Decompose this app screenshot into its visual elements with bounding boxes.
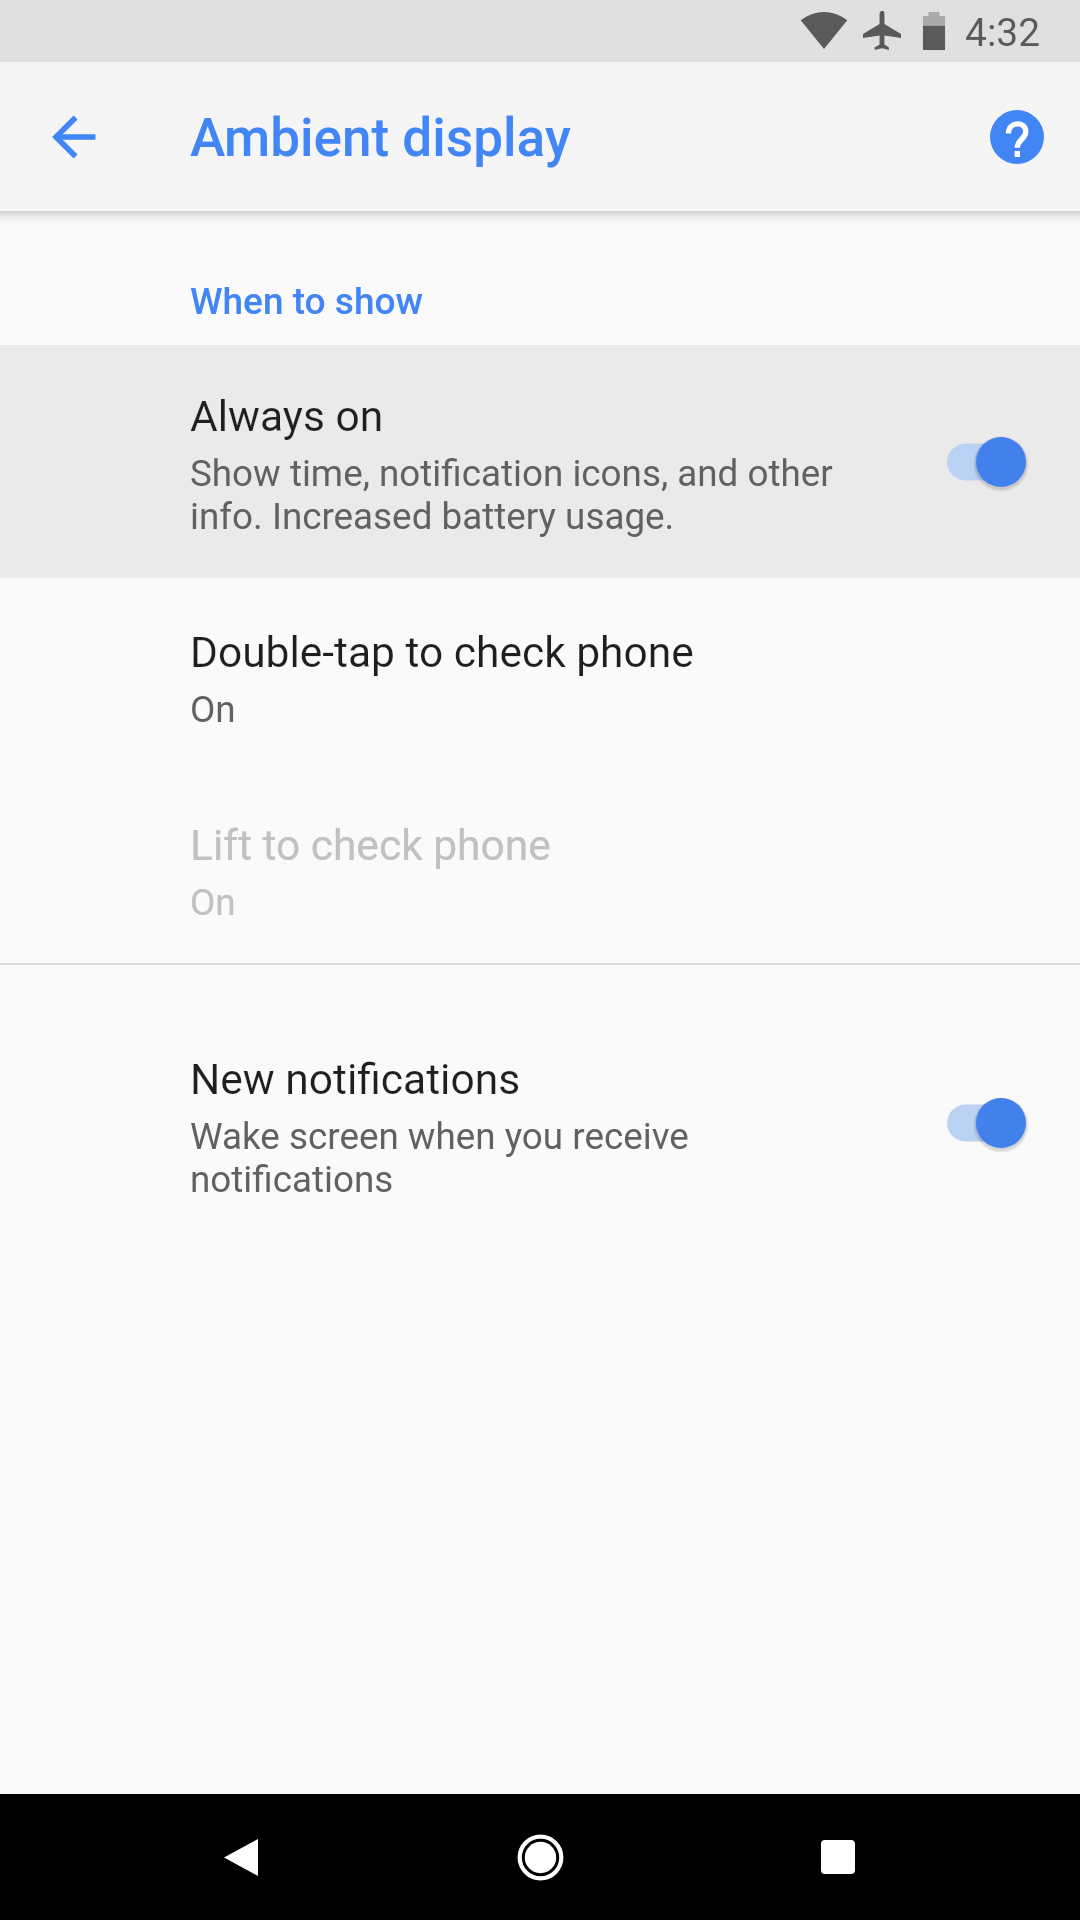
staticText: Always on: [190, 392, 384, 442]
staticText: Wake screen when you receive notificatio…: [190, 1115, 689, 1201]
staticText: New notifications: [190, 1055, 521, 1105]
staticText: Double-tap to check phone: [190, 628, 694, 678]
staticText: 4:32: [965, 10, 1041, 56]
button[interactable]: Always on switch: [917, 407, 1041, 517]
button[interactable]: Navigate up: [10, 71, 142, 203]
staticText: On: [190, 688, 236, 731]
button[interactable]: Always on: [0, 345, 1080, 578]
button[interactable]: New notifications switch: [917, 1068, 1041, 1178]
staticText: When to show: [190, 280, 424, 323]
staticText: Lift to check phone: [190, 821, 551, 871]
button[interactable]: Recent apps: [788, 1807, 888, 1907]
button[interactable]: Home: [490, 1807, 590, 1907]
staticText: Show time, notification icons, and other…: [190, 452, 833, 538]
staticText: On: [190, 881, 236, 924]
button[interactable]: Back: [191, 1807, 291, 1907]
button[interactable]: New notifications: [0, 1006, 1080, 1239]
staticText: Ambient display: [190, 107, 571, 169]
button[interactable]: Help: [951, 71, 1080, 203]
button[interactable]: Double-tap to check phone: [0, 578, 1080, 770]
button[interactable]: Lift to check phone: [0, 770, 1080, 963]
